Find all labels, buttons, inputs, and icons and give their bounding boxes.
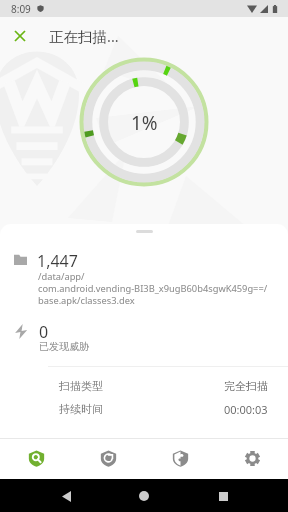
button[interactable]: Update xyxy=(72,438,144,479)
staticText: 扫描类型 xyxy=(59,379,103,393)
button[interactable]: Home xyxy=(131,483,157,509)
staticText: 1% xyxy=(131,110,158,136)
staticText: 完全扫描 xyxy=(224,379,268,393)
button[interactable]: 扫描类型 xyxy=(59,375,268,397)
button[interactable]: Recents xyxy=(210,483,236,509)
staticText: 正在扫描... xyxy=(49,26,119,46)
staticText: 1,447 xyxy=(37,250,78,272)
button[interactable]: Close xyxy=(5,21,34,50)
button[interactable]: Settings xyxy=(216,438,288,479)
staticText: 0 xyxy=(39,321,49,343)
button[interactable]: 持续时间 xyxy=(59,398,268,420)
button[interactable]: Back xyxy=(53,483,79,509)
staticText: 已发现威胁 xyxy=(39,340,89,353)
staticText: 持续时间 xyxy=(59,402,103,416)
staticText: /data/app/ com.android.vending-BI3B_x9ug… xyxy=(38,270,268,307)
button[interactable]: Protection xyxy=(144,438,216,479)
staticText: 00:00:03 xyxy=(224,402,268,417)
staticText: 8:09 xyxy=(11,2,31,16)
button[interactable]: Scan xyxy=(0,438,72,479)
